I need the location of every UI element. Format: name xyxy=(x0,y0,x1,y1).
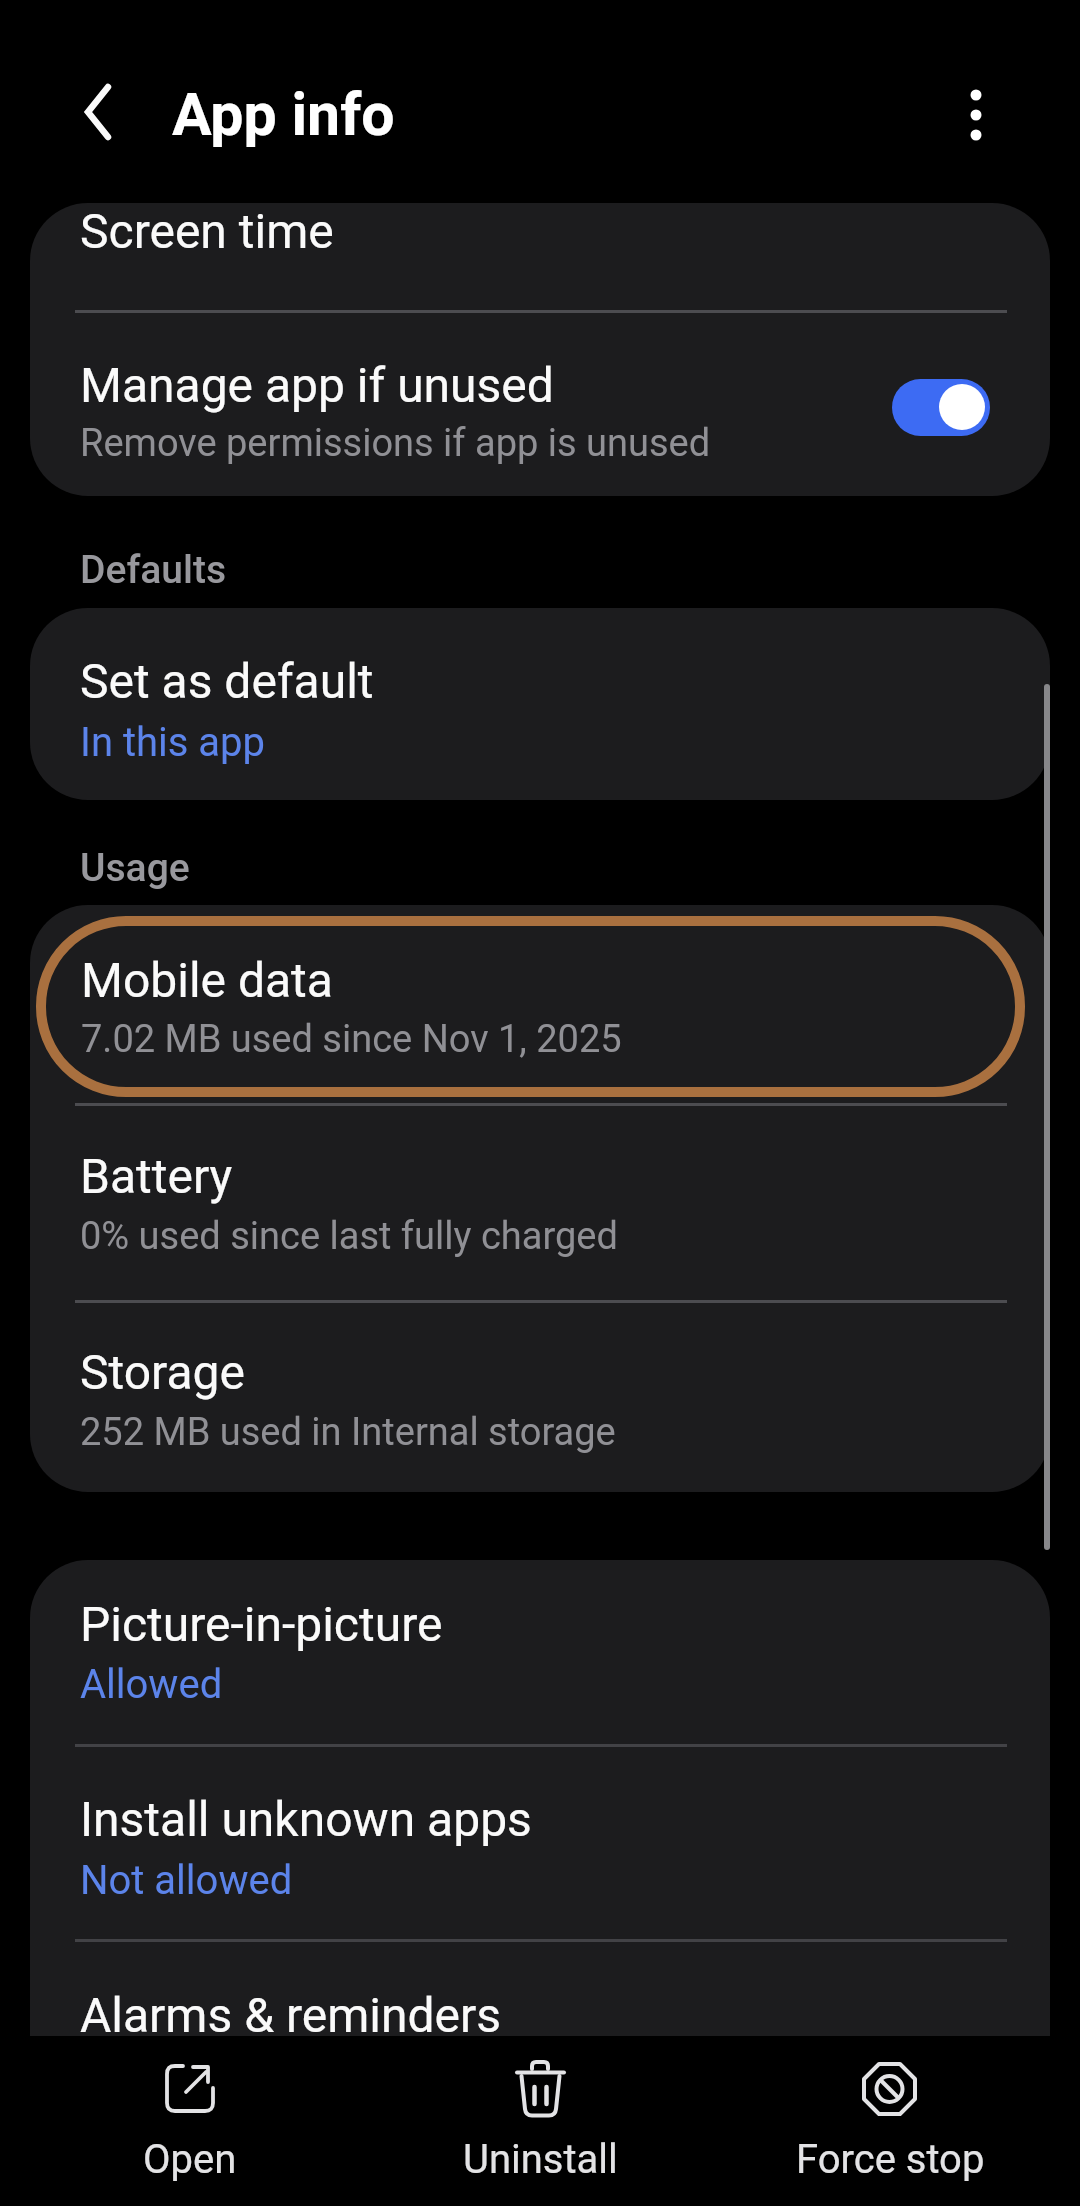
staticText: Allowed xyxy=(80,1661,223,1708)
button[interactable] xyxy=(30,313,1050,496)
button[interactable] xyxy=(62,77,136,147)
staticText: Mobile data xyxy=(81,952,333,1008)
button[interactable] xyxy=(30,1560,1050,1745)
staticText: Picture-in-picture xyxy=(80,1596,443,1652)
button[interactable]: Uninstall xyxy=(430,2040,650,2190)
button[interactable] xyxy=(30,905,1050,1103)
staticText: 0% used since last fully charged xyxy=(80,1214,618,1259)
staticText: In this app xyxy=(80,719,265,766)
staticText: Battery xyxy=(80,1148,233,1204)
staticText: App info xyxy=(172,80,395,149)
button[interactable] xyxy=(30,1747,1050,1939)
button[interactable] xyxy=(892,379,990,436)
staticText: Screen time xyxy=(80,203,334,259)
staticText: Remove permissions if app is unused xyxy=(80,421,711,466)
button[interactable] xyxy=(30,1303,1050,1492)
staticText: Alarms & reminders xyxy=(80,1987,502,2043)
staticText: 252 MB used in Internal storage xyxy=(80,1410,616,1455)
button[interactable] xyxy=(30,203,1050,311)
staticText: Defaults xyxy=(80,547,227,593)
button[interactable] xyxy=(30,1106,1050,1300)
staticText: Install unknown apps xyxy=(80,1791,532,1847)
staticText: Not allowed xyxy=(80,1857,293,1904)
staticText: Force stop xyxy=(796,2136,985,2183)
staticText: Manage app if unused xyxy=(80,357,554,413)
button[interactable] xyxy=(30,608,1050,800)
button[interactable] xyxy=(940,75,1012,155)
staticText: Open xyxy=(143,2136,237,2183)
staticText: Storage xyxy=(80,1344,245,1400)
button[interactable]: Open xyxy=(80,2040,300,2190)
staticText: Usage xyxy=(80,845,190,891)
button[interactable] xyxy=(30,1942,1050,2036)
staticText: Set as default xyxy=(80,653,374,709)
staticText: 7.02 MB used since Nov 1, 2025 xyxy=(81,1017,622,1062)
staticText: Uninstall xyxy=(463,2136,618,2183)
button[interactable]: Force stop xyxy=(780,2040,1000,2190)
